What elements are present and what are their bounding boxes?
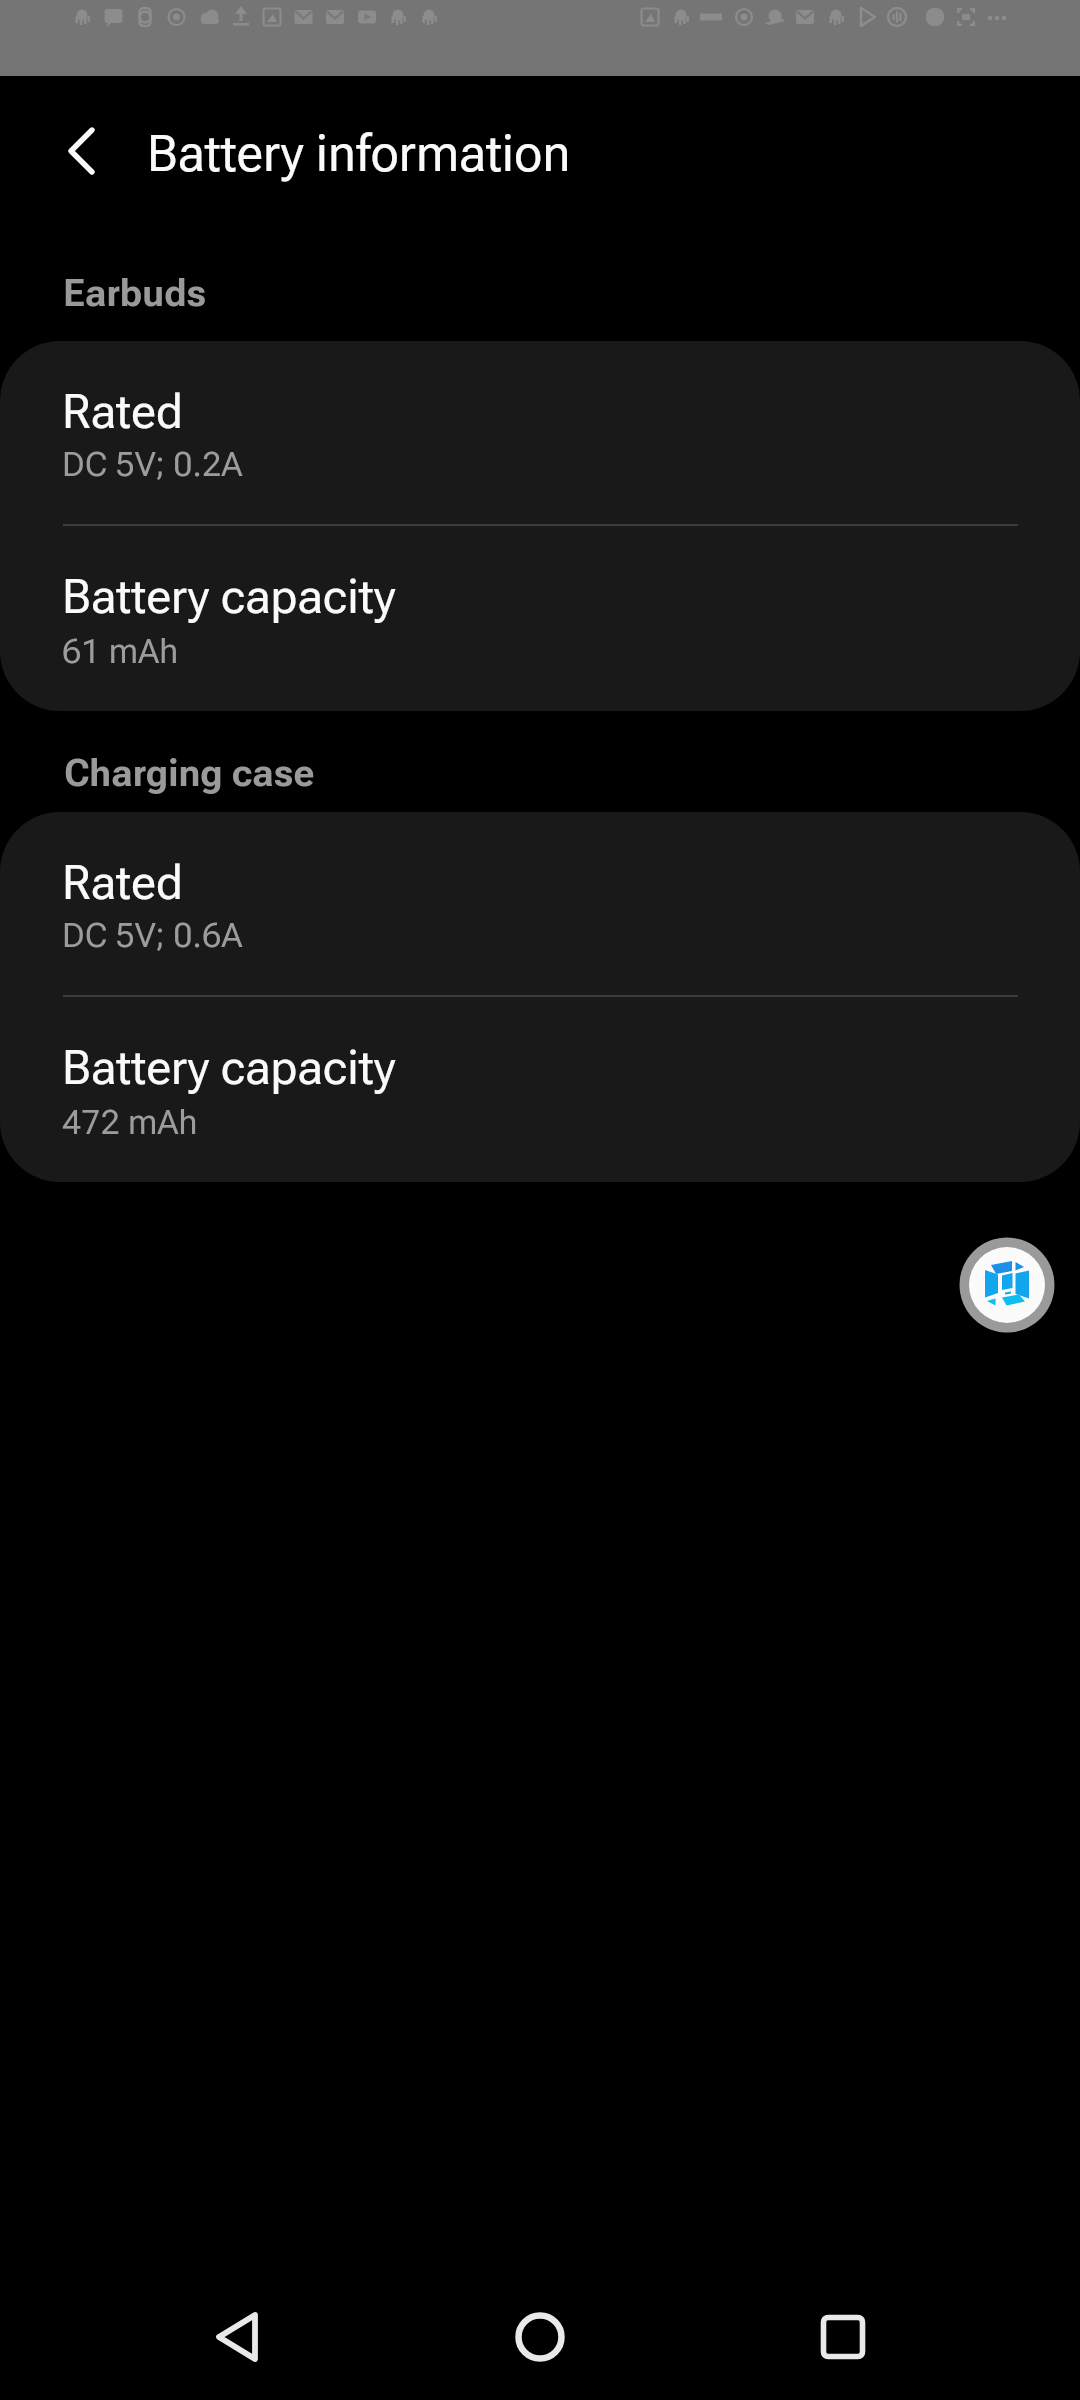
button[interactable]: Layout Inspector (959, 1237, 1055, 1333)
staticText: DC 5V; 0.6A (62, 915, 243, 955)
button[interactable]: Recent apps (783, 2277, 903, 2397)
staticText: 61 mAh (62, 631, 179, 671)
staticText: Rated (62, 384, 183, 439)
button[interactable]: Rated (0, 812, 1080, 995)
button[interactable]: Battery capacity (0, 997, 1080, 1182)
button[interactable]: Navigate up (38, 119, 102, 183)
staticText: DC 5V; 0.2A (62, 444, 243, 484)
button[interactable]: Rated (0, 341, 1080, 524)
staticText: Battery capacity (62, 1040, 396, 1095)
button[interactable]: Home (480, 2277, 600, 2397)
button[interactable]: Back (178, 2277, 298, 2397)
staticText: 472 mAh (62, 1102, 198, 1142)
staticText: Battery capacity (62, 569, 396, 624)
button[interactable]: Battery capacity (0, 526, 1080, 711)
staticText: Battery information (147, 125, 571, 184)
staticText: Earbuds (63, 272, 207, 315)
staticText: Charging case (64, 752, 315, 795)
staticText: Rated (62, 855, 183, 910)
